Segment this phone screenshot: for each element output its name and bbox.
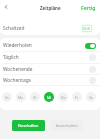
staticText: Mi <box>47 95 51 100</box>
staticText: Wochenende <box>3 66 33 73</box>
button[interactable]: Wochentags <box>0 75 100 86</box>
staticText: Einschalten <box>18 123 39 128</box>
staticText: Fertig <box>81 4 96 11</box>
staticText: Di <box>33 95 37 100</box>
staticText: Fr <box>75 95 79 100</box>
button[interactable]: Mo <box>16 92 26 102</box>
button[interactable]: Mi <box>44 92 54 102</box>
button[interactable]: Ausschalten <box>50 120 83 131</box>
button[interactable]: So <box>2 92 12 102</box>
button[interactable]: Back <box>0 0 12 14</box>
button[interactable]: Do <box>58 92 68 102</box>
staticText: So <box>5 95 9 100</box>
staticText: Wiederholen <box>3 42 32 49</box>
staticText: Ausschalten <box>56 123 78 128</box>
staticText: Sa <box>89 95 93 100</box>
button[interactable]: Einschalten <box>12 120 45 131</box>
button[interactable]: Täglich <box>0 52 100 63</box>
staticText: Täglich <box>3 54 19 61</box>
button[interactable]: Wochenende <box>0 64 100 75</box>
staticText: Do <box>61 95 66 100</box>
button[interactable]: Wiederholen <box>0 39 100 52</box>
staticText: Mo <box>18 95 24 100</box>
button[interactable]: Schaltzeit <box>0 21 100 35</box>
button[interactable]: Fertig <box>81 4 100 11</box>
button[interactable]: Fr <box>72 92 82 102</box>
button[interactable]: Sa <box>86 92 96 102</box>
staticText: Wochentags <box>3 77 31 84</box>
button[interactable]: Di <box>30 92 40 102</box>
staticText: Zeitpläne <box>40 5 61 11</box>
staticText: Schaltzeit <box>3 25 25 32</box>
button[interactable]: Repeat toggle <box>85 43 96 49</box>
staticText: 00:30 <box>83 27 91 31</box>
